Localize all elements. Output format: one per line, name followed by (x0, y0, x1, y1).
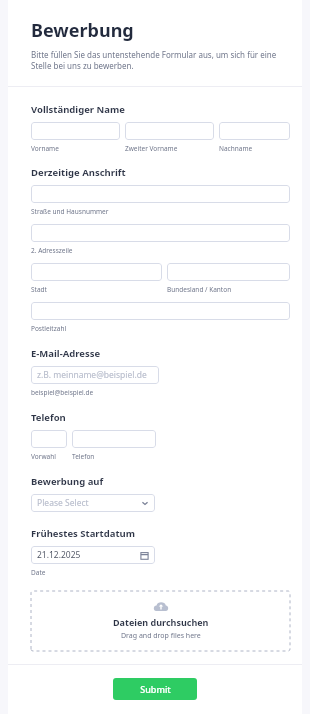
staticText: z.B. meinname@beispiel.de (37, 369, 147, 381)
staticText: Bitte füllen Sie das untenstehende Formu… (31, 49, 287, 72)
staticText: Submit (140, 683, 171, 695)
button[interactable] (219, 122, 290, 140)
staticText: 2. Adresszeile (31, 246, 73, 255)
staticText: Telefon (72, 452, 95, 461)
staticText: 21.12.2025 (37, 549, 81, 561)
staticText: Straße und Hausnummer (31, 207, 109, 216)
button[interactable] (31, 302, 290, 320)
staticText: Nachname (219, 144, 253, 153)
button[interactable]: Please Select (31, 494, 155, 512)
staticText: Vollständiger Name (31, 103, 125, 116)
staticText: Frühestes Startdatum (31, 527, 135, 540)
other: Kalender öffnen (140, 551, 149, 560)
staticText: Bewerbung (31, 18, 134, 43)
staticText: Please Select (37, 497, 89, 509)
staticText: E-Mail-Adresse (31, 347, 101, 360)
staticText: Drag and drop files here (121, 631, 201, 641)
button[interactable]: 21.12.2025 (31, 546, 155, 564)
button[interactable]: Dateien durchsuchen (31, 591, 290, 651)
staticText: Vorname (31, 144, 59, 153)
button[interactable] (31, 430, 67, 448)
staticText: Dateien durchsuchen (113, 616, 209, 628)
staticText: Date (31, 568, 46, 577)
button[interactable] (72, 430, 156, 448)
staticText: Bewerbung auf (31, 475, 104, 488)
staticText: Telefon (31, 411, 66, 424)
button[interactable]: Submit (113, 678, 197, 700)
button[interactable]: z.B. meinname@beispiel.de (31, 366, 159, 384)
button[interactable] (125, 122, 214, 140)
button[interactable] (31, 185, 290, 203)
staticText: Derzeitige Anschrift (31, 166, 126, 179)
staticText: Zweiter Vorname (125, 144, 178, 153)
button[interactable] (167, 263, 290, 281)
staticText: Bundesland / Kanton (167, 285, 232, 294)
staticText: Postleitzahl (31, 324, 67, 333)
staticText: beispiel@beispiel.de (31, 388, 94, 397)
staticText: Stadt (31, 285, 47, 294)
button[interactable] (31, 224, 290, 242)
button[interactable] (31, 122, 120, 140)
button[interactable] (31, 263, 162, 281)
staticText: Vorwahl (31, 452, 56, 461)
